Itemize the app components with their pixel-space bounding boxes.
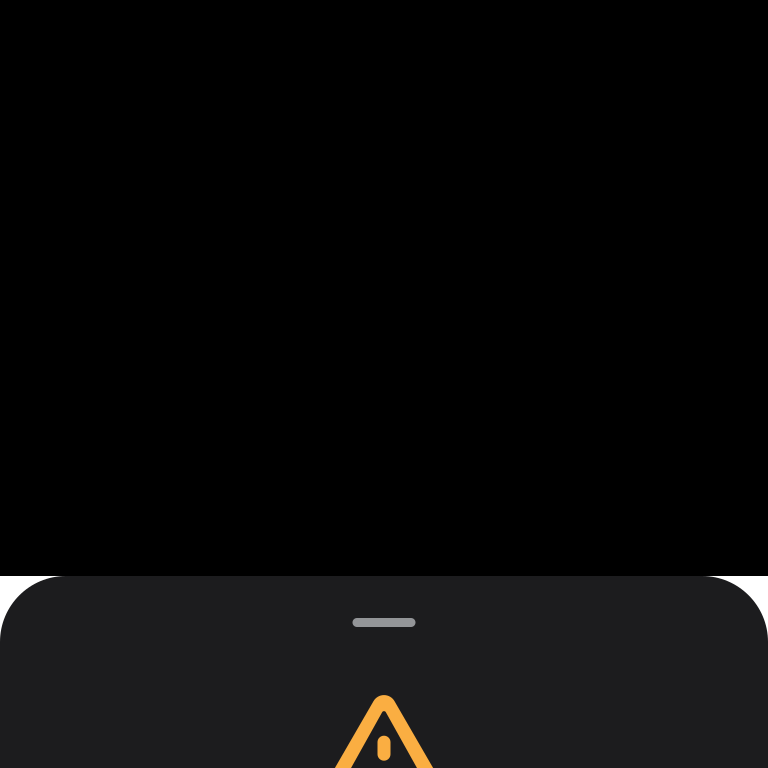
button[interactable]: Drag to resize sheet <box>352 576 415 627</box>
